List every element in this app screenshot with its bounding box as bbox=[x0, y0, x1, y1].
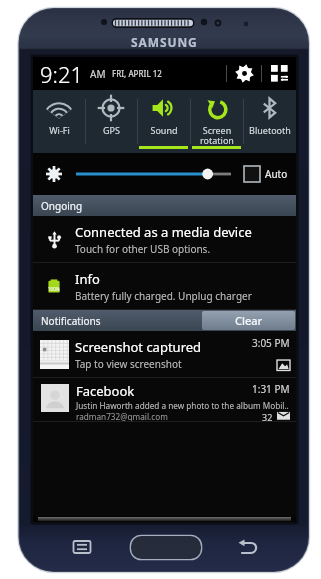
button[interactable]: Quick settings grid bbox=[262, 57, 296, 90]
staticText: Justin Haworth added a new photo to the … bbox=[76, 400, 289, 411]
staticText: Sound bbox=[150, 124, 178, 136]
staticText: Wi-Fi bbox=[49, 124, 70, 136]
staticText: FRI, APRIL 12 bbox=[112, 68, 162, 79]
staticText: 9:21 bbox=[40, 59, 84, 89]
staticText: Screen rotation bbox=[200, 124, 234, 146]
button[interactable]: Brightness bbox=[75, 166, 232, 182]
staticText: radman732@gmail.com bbox=[76, 411, 262, 421]
staticText: Facebook bbox=[76, 382, 252, 400]
staticText: Info bbox=[75, 270, 100, 288]
button[interactable]: Wi-Fi bbox=[33, 90, 85, 153]
button[interactable]: Facebook bbox=[33, 378, 296, 422]
staticText: Notifications bbox=[41, 314, 101, 328]
button[interactable]: Clear bbox=[202, 311, 295, 330]
staticText: Auto bbox=[265, 167, 288, 181]
button[interactable]: Sound bbox=[137, 90, 190, 153]
staticText: 3:05 PM bbox=[252, 336, 290, 350]
staticText: 1:31 PM bbox=[252, 382, 290, 396]
button[interactable]: 100% bbox=[33, 263, 296, 310]
staticText: Connected as a media device bbox=[75, 223, 252, 241]
staticText: 32 bbox=[262, 411, 273, 421]
staticText: 100% bbox=[48, 286, 60, 292]
button[interactable]: Screen rotation bbox=[190, 90, 243, 153]
staticText: Screenshot captured bbox=[75, 338, 202, 356]
staticText: Touch for other USB options. bbox=[75, 242, 211, 256]
button[interactable]: GPS bbox=[85, 90, 137, 153]
button[interactable]: Close panel bbox=[33, 516, 296, 522]
staticText: Tap to view screenshot bbox=[75, 357, 182, 371]
staticText: SAMSUNG bbox=[131, 34, 198, 50]
staticText: GPS bbox=[103, 124, 120, 136]
button[interactable]: Connected as a media device bbox=[33, 216, 296, 263]
button[interactable]: Auto brightness bbox=[244, 166, 260, 182]
staticText: Ongoing bbox=[41, 199, 83, 213]
button[interactable]: Settings bbox=[227, 57, 261, 90]
staticText: AM bbox=[90, 67, 106, 81]
staticText: Bluetooth bbox=[249, 124, 291, 136]
button[interactable]: Screenshot captured bbox=[33, 331, 296, 378]
staticText: Battery fully charged. Unplug charger bbox=[75, 289, 252, 303]
button[interactable]: Bluetooth bbox=[243, 90, 296, 153]
staticText: Clear bbox=[235, 313, 263, 328]
